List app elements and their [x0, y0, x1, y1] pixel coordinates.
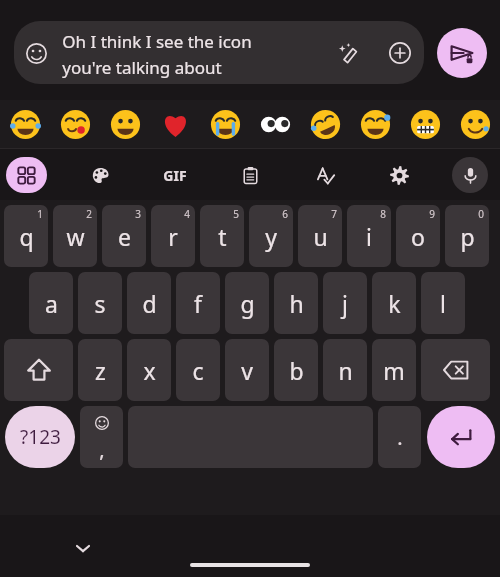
staticText: n: [338, 355, 353, 386]
button[interactable]: p: [445, 205, 489, 267]
button[interactable]: Emoji 9: [400, 100, 450, 148]
staticText: you're talking about: [62, 56, 222, 79]
button[interactable]: Emoji 3: [100, 100, 150, 148]
button[interactable]: s: [78, 272, 122, 334]
staticText: ?123: [20, 424, 61, 450]
button[interactable]: l: [421, 272, 465, 334]
staticText: q: [19, 221, 34, 252]
button[interactable]: Emoji and comma: [80, 406, 123, 468]
button[interactable]: o: [396, 205, 440, 267]
button[interactable]: Send encrypted message: [437, 28, 487, 78]
button[interactable]: b: [274, 339, 318, 401]
staticText: s: [94, 288, 106, 319]
button[interactable]: Backspace: [421, 339, 490, 401]
staticText: 3: [135, 207, 141, 221]
button[interactable]: Shift: [4, 339, 73, 401]
button[interactable]: Emoji 5: [200, 100, 250, 148]
button[interactable]: v: [225, 339, 269, 401]
button[interactable]: x: [127, 339, 171, 401]
staticText: e: [118, 221, 131, 252]
button[interactable]: Spell check: [307, 157, 343, 193]
button[interactable]: y: [249, 205, 293, 267]
button[interactable]: Emoji 10: [450, 100, 500, 148]
button[interactable]: Open features: [6, 157, 47, 193]
button[interactable]: Hide keyboard: [68, 533, 98, 563]
button[interactable]: Emoji: [23, 40, 49, 66]
staticText: k: [388, 288, 401, 319]
staticText: 7: [331, 207, 337, 221]
button[interactable]: Emoji 2: [50, 100, 100, 148]
button[interactable]: n: [323, 339, 367, 401]
button[interactable]: z: [78, 339, 122, 401]
button[interactable]: k: [372, 272, 416, 334]
staticText: p: [460, 221, 475, 252]
staticText: 6: [282, 207, 288, 221]
button[interactable]: Clipboard: [232, 157, 268, 193]
staticText: 8: [380, 207, 386, 221]
button[interactable]: h: [274, 272, 318, 334]
button[interactable]: g: [225, 272, 269, 334]
staticText: j: [342, 288, 348, 319]
staticText: 5: [233, 207, 239, 221]
button[interactable]: Emoji 7: [300, 100, 350, 148]
button[interactable]: Emoji 1: [0, 100, 50, 148]
button[interactable]: GIF: [157, 157, 193, 193]
staticText: 1: [37, 207, 43, 221]
button[interactable]: Voice input: [452, 157, 488, 193]
staticText: 4: [184, 207, 190, 221]
staticText: Oh I think I see the icon: [62, 30, 252, 53]
button[interactable]: Emoji: [14, 21, 424, 84]
staticText: 2: [86, 207, 92, 221]
button[interactable]: q: [4, 205, 48, 267]
button[interactable]: Magic compose: [335, 40, 361, 66]
staticText: v: [241, 355, 253, 386]
staticText: ,: [99, 436, 105, 463]
staticText: 0: [478, 207, 484, 221]
button[interactable]: t: [200, 205, 244, 267]
button[interactable]: ?123: [5, 406, 75, 468]
button[interactable]: .: [378, 406, 421, 468]
staticText: r: [168, 221, 178, 252]
staticText: t: [218, 221, 227, 252]
button[interactable]: Emoji 8: [350, 100, 400, 148]
staticText: u: [313, 221, 328, 252]
button[interactable]: a: [29, 272, 73, 334]
staticText: i: [366, 221, 372, 252]
staticText: GIF: [163, 166, 187, 185]
staticText: d: [142, 288, 157, 319]
staticText: a: [45, 288, 58, 319]
button[interactable]: Emoji 6: [250, 100, 300, 148]
button[interactable]: w: [53, 205, 97, 267]
button[interactable]: d: [127, 272, 171, 334]
staticText: l: [440, 288, 446, 319]
button[interactable]: Themes: [82, 157, 118, 193]
staticText: o: [411, 221, 425, 252]
staticText: h: [289, 288, 304, 319]
staticText: z: [95, 355, 106, 386]
button[interactable]: m: [372, 339, 416, 401]
button[interactable]: j: [323, 272, 367, 334]
staticText: m: [383, 355, 405, 386]
button[interactable]: i: [347, 205, 391, 267]
staticText: g: [240, 288, 255, 319]
button[interactable]: r: [151, 205, 195, 267]
staticText: w: [66, 221, 85, 252]
button[interactable]: Settings: [381, 157, 417, 193]
button[interactable]: Enter: [427, 406, 495, 468]
button[interactable]: Add attachment: [387, 40, 413, 66]
staticText: x: [143, 355, 156, 386]
button[interactable]: c: [176, 339, 220, 401]
staticText: 9: [429, 207, 435, 221]
staticText: y: [265, 221, 277, 252]
staticText: f: [194, 288, 202, 319]
button[interactable]: Emoji 4: [150, 100, 200, 148]
button[interactable]: u: [298, 205, 342, 267]
button[interactable]: e: [102, 205, 146, 267]
staticText: b: [289, 355, 304, 386]
staticText: c: [192, 355, 204, 386]
button[interactable]: f: [176, 272, 220, 334]
staticText: .: [397, 424, 403, 451]
